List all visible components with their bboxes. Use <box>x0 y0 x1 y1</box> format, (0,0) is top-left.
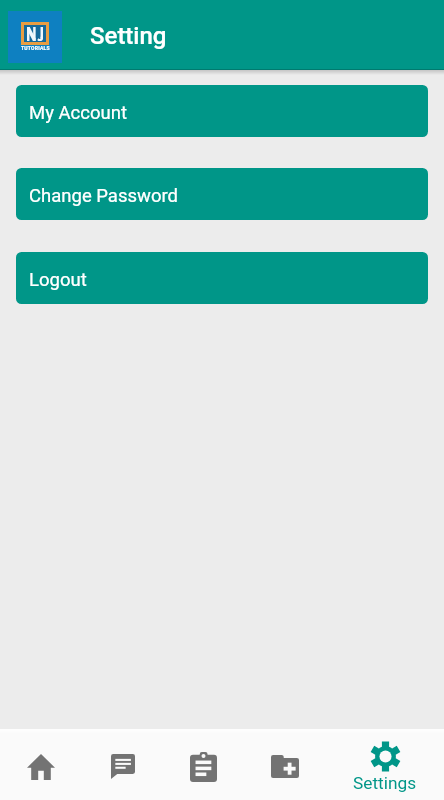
staticText: My Account <box>29 102 127 124</box>
staticText: Logout <box>29 269 87 291</box>
button[interactable]: My Account <box>16 85 428 137</box>
staticText: TUTORIALS <box>21 45 50 51</box>
button[interactable]: New folder <box>244 729 325 800</box>
button[interactable]: Logout <box>16 252 428 304</box>
button[interactable]: Settings <box>325 729 444 800</box>
button[interactable]: Home <box>0 729 82 800</box>
staticText: Setting <box>90 22 167 50</box>
button[interactable]: Notes <box>163 729 244 800</box>
button[interactable]: Change Password <box>16 168 428 220</box>
staticText: Settings <box>353 773 417 793</box>
staticText: Change Password <box>29 185 179 207</box>
button[interactable]: Messages <box>82 729 163 800</box>
